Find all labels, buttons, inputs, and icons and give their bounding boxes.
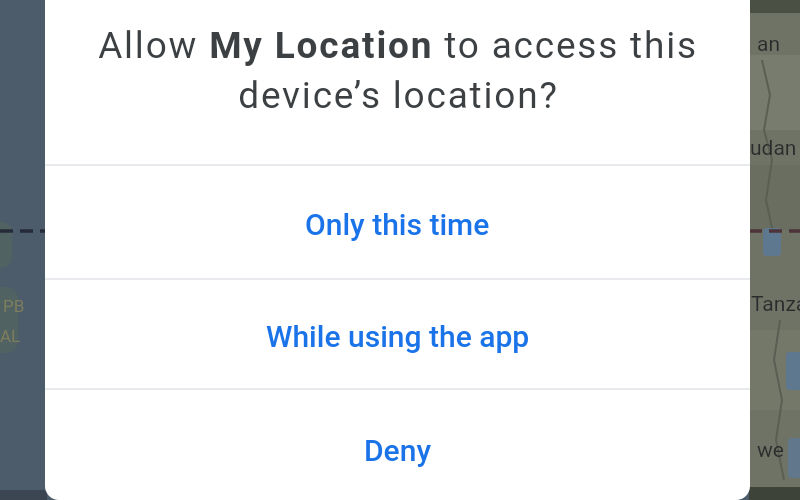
staticText: we xyxy=(757,438,784,463)
staticText: AL xyxy=(0,326,21,346)
button[interactable]: Deny xyxy=(45,390,750,500)
staticText: Allow My Location to access this xyxy=(98,24,698,67)
staticText: device’s location? xyxy=(238,74,559,117)
button[interactable]: While using the app xyxy=(45,280,750,388)
staticText: udan xyxy=(750,136,797,161)
button[interactable]: Only this time xyxy=(45,166,750,278)
staticText: While using the app xyxy=(266,319,530,354)
staticText: an xyxy=(757,32,781,57)
staticText: Tanza xyxy=(751,292,800,317)
staticText: PB xyxy=(3,296,25,316)
staticText: Only this time xyxy=(305,207,490,242)
staticText: Deny xyxy=(364,433,431,468)
